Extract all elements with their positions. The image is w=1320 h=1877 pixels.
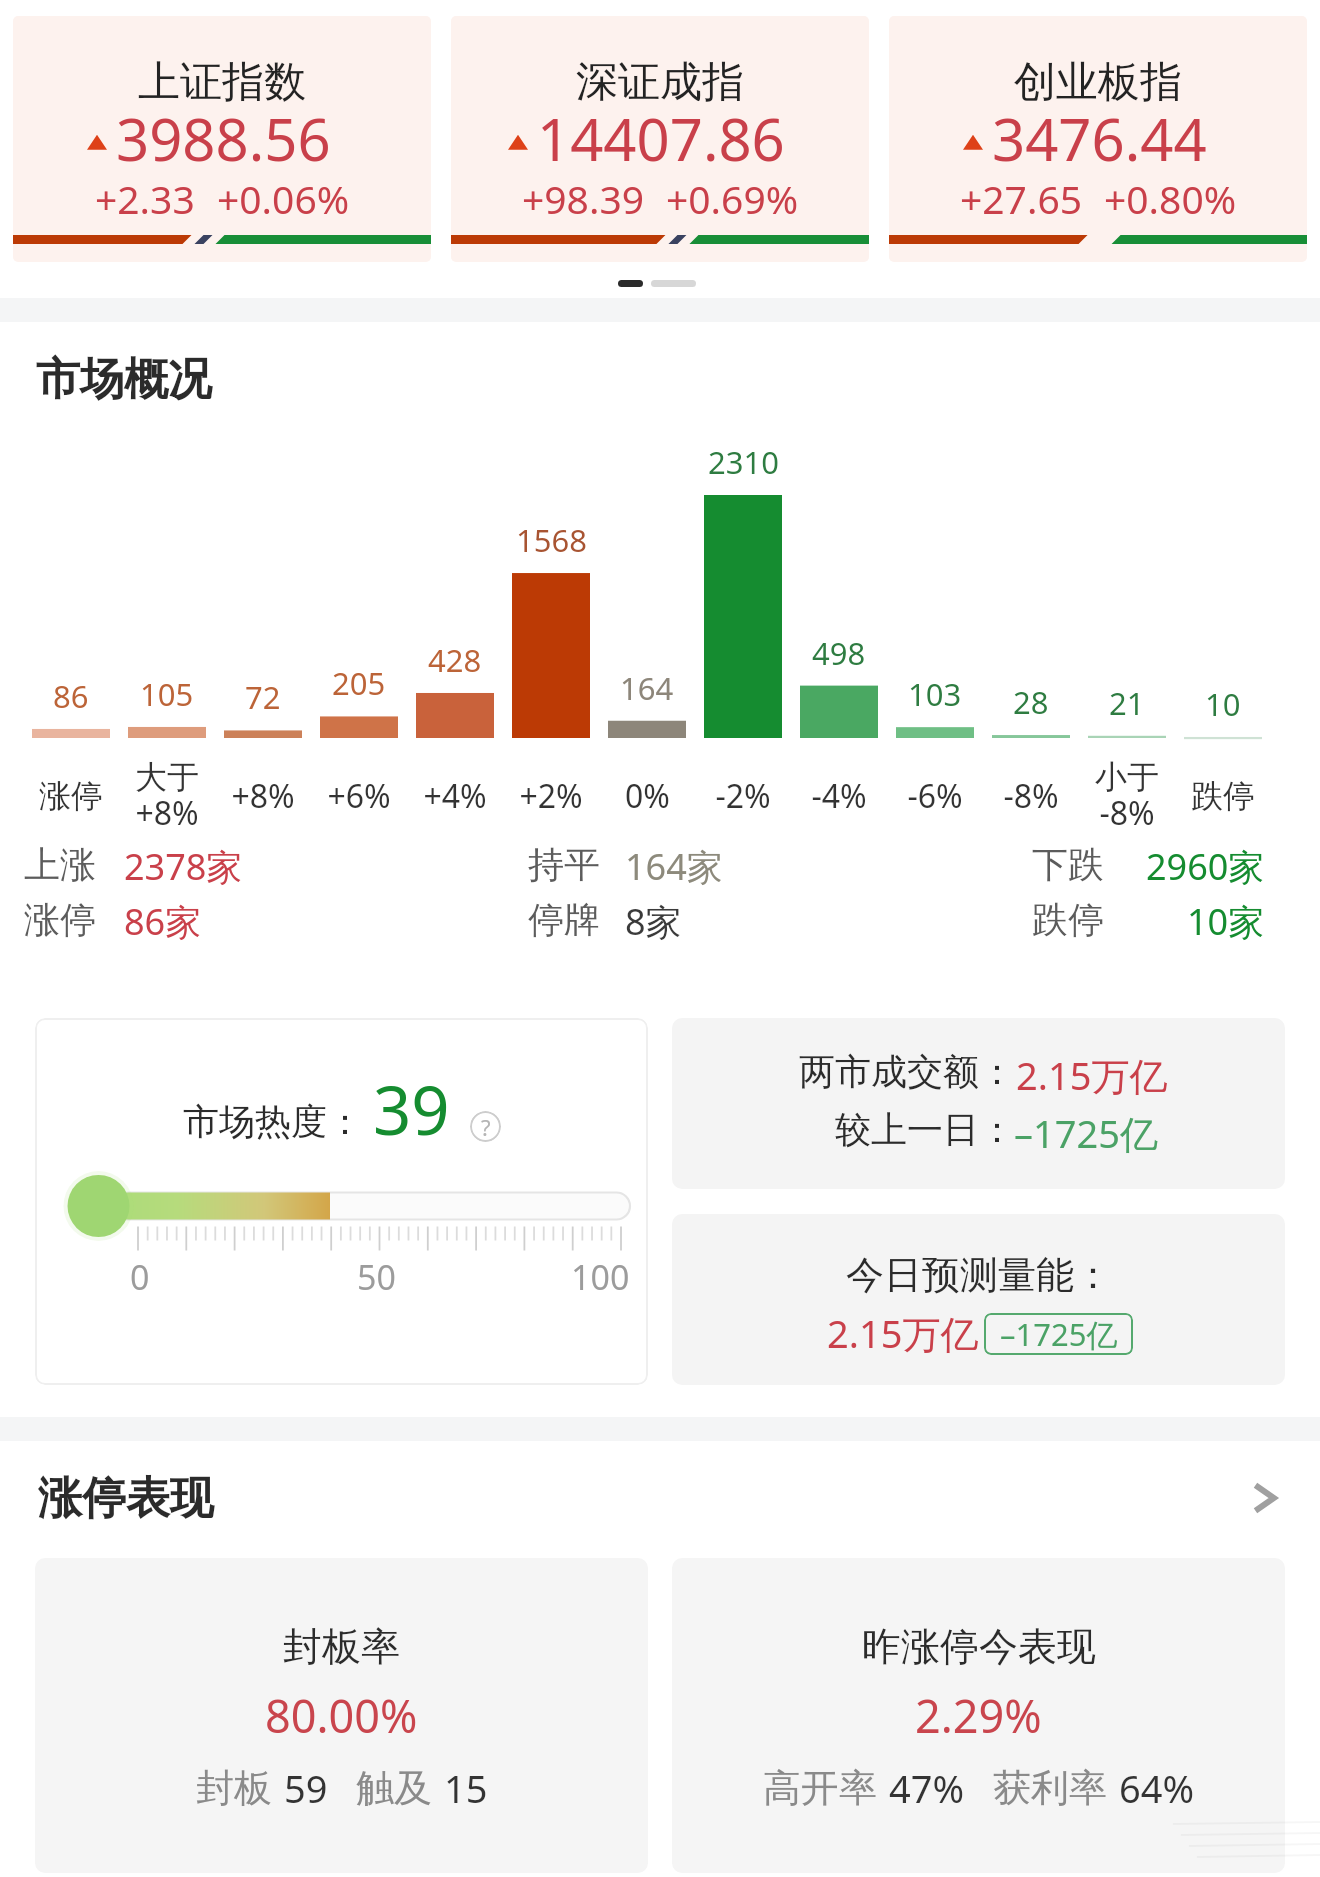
button[interactable]: 今日预测量能： [672, 1214, 1285, 1385]
staticText: 103 [908, 673, 962, 715]
staticText: +27.65 [960, 172, 1082, 225]
staticText: 市场概况 [36, 352, 212, 407]
staticText: 0% [625, 774, 670, 818]
staticText: 3988.56 [116, 99, 331, 178]
staticText: 停牌 [528, 897, 600, 942]
staticText: 跌停 [1191, 776, 1255, 816]
staticText: 下跌 [1032, 842, 1104, 887]
staticText: 创业板指 [1014, 56, 1182, 109]
staticText: 2.15万亿 [1016, 1049, 1168, 1101]
button[interactable]: 市场热度： [35, 1018, 648, 1385]
staticText: 封板率 [283, 1622, 400, 1671]
button[interactable]: 上证指数 [13, 16, 431, 262]
staticText: 较上一日： [835, 1107, 1015, 1152]
staticText: 获利率 [993, 1764, 1107, 1812]
staticText: 深证成指 [576, 56, 744, 109]
staticText: +2% [519, 774, 583, 818]
button[interactable]: 昨涨停今表现 [672, 1558, 1285, 1873]
staticText: -4% [811, 774, 867, 818]
staticText: 跌停 [1032, 897, 1104, 942]
staticText: 64% [1119, 1762, 1195, 1814]
staticText: 上证指数 [138, 56, 306, 109]
staticText: –1725亿 [1000, 1313, 1118, 1355]
staticText: 持平 [528, 842, 600, 887]
button[interactable]: 说明 [470, 1111, 501, 1142]
staticText: 触及 [356, 1764, 432, 1812]
staticText: 市场热度： [183, 1099, 363, 1144]
staticText: 3476.44 [992, 99, 1207, 178]
staticText: 164 [620, 667, 674, 709]
staticText: 164家 [625, 842, 723, 891]
button[interactable]: 深证成指 [451, 16, 869, 262]
staticText: -2% [715, 774, 771, 818]
staticText: 21 [1109, 682, 1145, 724]
button[interactable]: 封板率 [35, 1558, 648, 1873]
staticText: 0 [130, 1254, 150, 1300]
staticText: 100 [571, 1254, 630, 1300]
staticText: 59 [284, 1762, 328, 1814]
staticText: -6% [907, 774, 963, 818]
staticText: 涨停 [24, 897, 96, 942]
staticText: 高开率 [763, 1764, 877, 1812]
staticText: 80.00% [265, 1685, 418, 1746]
staticText: +6% [327, 774, 391, 818]
staticText: 两市成交额： [799, 1049, 1015, 1094]
staticText: 86 [53, 675, 89, 717]
button[interactable]: 创业板指 [889, 16, 1307, 262]
staticText: 2378家 [124, 842, 243, 891]
staticText: 昨涨停今表现 [862, 1622, 1096, 1671]
staticText: 28 [1013, 681, 1049, 723]
staticText: +98.39 [522, 172, 644, 225]
staticText: 大于 +8% [135, 757, 199, 835]
staticText: 15 [444, 1762, 488, 1814]
staticText: 8家 [625, 897, 682, 946]
staticText: 1568 [516, 519, 587, 561]
staticText: +8% [231, 774, 295, 818]
staticText: 498 [812, 632, 866, 674]
button[interactable]: 第二页 [651, 280, 696, 287]
staticText: 10 [1205, 683, 1241, 725]
staticText: –1725亿 [1014, 1107, 1158, 1159]
staticText: 86家 [124, 897, 202, 946]
staticText: 小于 -8% [1095, 757, 1159, 835]
staticText: 涨停 [39, 776, 103, 816]
staticText: 2.15万亿 [827, 1307, 979, 1359]
staticText: 428 [428, 639, 482, 681]
staticText: 14407.86 [537, 99, 785, 178]
staticText: +4% [423, 774, 487, 818]
button[interactable]: 涨停表现 [38, 1470, 1282, 1526]
staticText: 72 [245, 676, 281, 718]
staticText: 205 [332, 662, 386, 704]
staticText: 2960家 [1146, 842, 1265, 891]
staticText: 今日预测量能： [846, 1251, 1112, 1299]
button[interactable]: 查看更多涨停表现 [1248, 1476, 1282, 1520]
staticText: 10家 [1187, 897, 1265, 946]
staticText: 2.29% [915, 1685, 1042, 1746]
staticText: 封板 [196, 1764, 272, 1812]
staticText: +0.69% [666, 172, 799, 225]
staticText: +2.33 [95, 172, 195, 225]
staticText: 涨停表现 [38, 1471, 214, 1526]
staticText: 50 [357, 1254, 396, 1300]
staticText: -8% [1003, 774, 1059, 818]
staticText: 39 [373, 1063, 450, 1154]
staticText: 上涨 [24, 842, 96, 887]
staticText: ? [481, 1112, 491, 1142]
staticText: +0.80% [1104, 172, 1237, 225]
button[interactable]: 第一页 [618, 280, 643, 287]
staticText: 2310 [708, 441, 779, 483]
staticText: +0.06% [217, 172, 350, 225]
staticText: 105 [140, 673, 194, 715]
button[interactable]: 两市成交额： [672, 1018, 1285, 1189]
staticText: 47% [889, 1762, 965, 1814]
